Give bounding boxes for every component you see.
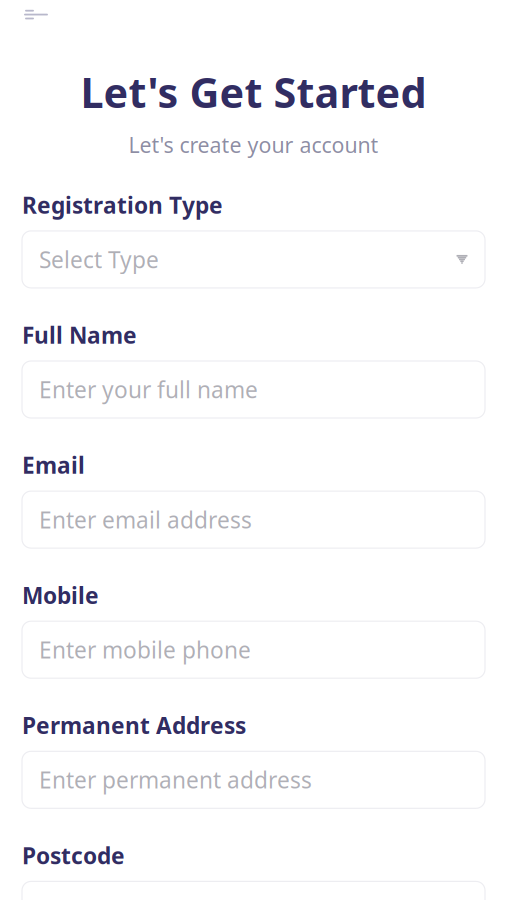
staticText: Enter your full name <box>39 374 258 405</box>
staticText: Let's Get Started <box>80 65 426 119</box>
button[interactable]: Enter mobile phone <box>22 621 485 678</box>
staticText: Full Name <box>22 320 137 350</box>
staticText: Mobile <box>22 580 99 610</box>
button[interactable]: Enter email address <box>22 491 485 548</box>
staticText: Enter permanent address <box>39 765 312 795</box>
staticText: Postcode <box>22 840 125 870</box>
button[interactable]: Enter your full name <box>22 361 485 418</box>
button[interactable]: Enter post code <box>22 881 485 900</box>
button[interactable]: Back <box>12 0 60 33</box>
staticText: Enter mobile phone <box>39 635 251 665</box>
staticText: Let's create your account <box>128 130 378 159</box>
staticText: Select Type <box>39 244 159 274</box>
staticText: Email <box>22 450 85 480</box>
staticText: Enter email address <box>39 505 252 535</box>
staticText: Permanent Address <box>22 710 246 740</box>
button[interactable]: Select Type <box>22 231 485 288</box>
button[interactable]: Enter permanent address <box>22 751 485 808</box>
staticText: Registration Type <box>22 190 223 220</box>
